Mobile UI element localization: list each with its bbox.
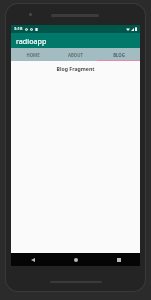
button[interactable]: Home: [54, 253, 97, 266]
staticText: 3:18: [14, 26, 23, 32]
button[interactable]: Back: [11, 253, 54, 266]
button[interactable]: HOME: [11, 48, 54, 61]
staticText: Blog Fragment: [56, 65, 95, 72]
staticText: radioapp: [16, 36, 47, 46]
staticText: BLOG: [113, 52, 125, 58]
button[interactable]: radioapp: [11, 33, 140, 48]
staticText: HOME: [26, 52, 40, 58]
button[interactable]: BLOG: [97, 48, 140, 61]
button[interactable]: ABOUT: [54, 48, 97, 61]
staticText: ABOUT: [68, 52, 83, 58]
button[interactable]: Recent apps: [97, 253, 140, 266]
